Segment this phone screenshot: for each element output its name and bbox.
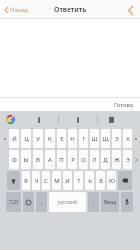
staticText: В: [36, 156, 40, 164]
staticText: Щ: [102, 135, 109, 143]
staticText: С: [44, 177, 48, 185]
staticText: Г: [82, 135, 86, 143]
staticText: Д: [103, 156, 108, 164]
button[interactable]: Б: [96, 171, 105, 190]
button[interactable]: В: [33, 150, 43, 169]
staticText: Ц: [24, 135, 29, 143]
staticText: Ж: [114, 156, 120, 164]
button[interactable]: Э: [123, 150, 132, 169]
button[interactable]: Right: [134, 150, 138, 169]
staticText: Н: [70, 135, 75, 143]
staticText: И: [65, 177, 70, 185]
button[interactable]: П: [57, 150, 66, 169]
staticText: Л: [92, 156, 97, 164]
staticText: русский: [58, 199, 78, 206]
button[interactable]: Previous: [2, 129, 7, 148]
staticText: Ь: [88, 177, 92, 185]
staticText: Ы: [23, 156, 29, 164]
staticText: Б: [99, 177, 103, 185]
staticText: Е: [60, 135, 64, 143]
button[interactable]: Н: [68, 129, 77, 148]
button[interactable]: Й: [9, 129, 19, 148]
button[interactable]: [59, 111, 97, 128]
button[interactable]: Next: [134, 129, 138, 148]
staticText: Э: [126, 156, 130, 164]
staticText: Ч: [34, 177, 39, 185]
button[interactable]: русский: [49, 192, 86, 212]
button[interactable]: Назад: [2, 4, 30, 16]
staticText: Й: [12, 135, 17, 143]
staticText: Назад: [10, 6, 28, 14]
button[interactable]: З: [112, 129, 121, 148]
button[interactable]: Comma: [36, 192, 47, 212]
button[interactable]: Ж: [112, 150, 121, 169]
button[interactable]: Ю: [107, 171, 116, 190]
button[interactable]: Google search: [0, 111, 20, 128]
staticText: А: [48, 156, 52, 164]
staticText: Ю: [109, 177, 115, 185]
button[interactable]: Л: [90, 150, 99, 169]
button[interactable]: А: [45, 150, 55, 169]
button[interactable]: Х: [123, 129, 132, 148]
button[interactable]: Д: [101, 150, 110, 169]
button[interactable]: Готово: [111, 99, 137, 111]
staticText: М: [54, 177, 60, 185]
button[interactable]: Voice input: [121, 192, 133, 212]
staticText: З: [115, 135, 119, 143]
staticText: Ввод: [104, 199, 117, 206]
staticText: О: [81, 156, 86, 164]
staticText: ,: [41, 198, 43, 206]
button[interactable]: Ь: [85, 171, 94, 190]
button[interactable]: Ф: [9, 150, 19, 169]
staticText: У: [36, 135, 40, 143]
button[interactable]: Т: [74, 171, 83, 190]
staticText: Т: [77, 177, 81, 185]
button[interactable]: К: [45, 129, 55, 148]
button[interactable]: Clipboard: [98, 111, 124, 128]
button[interactable]: Emoji: [23, 192, 34, 212]
button[interactable]: Ц: [21, 129, 31, 148]
button[interactable]: Shift: [7, 171, 20, 190]
button[interactable]: Symbols: [6, 192, 21, 212]
button[interactable]: [20, 111, 58, 128]
button[interactable]: С: [42, 171, 50, 190]
staticText: Р: [71, 156, 75, 164]
staticText: Х: [126, 135, 130, 143]
button[interactable]: Е: [57, 129, 66, 148]
button[interactable]: Send: [123, 3, 137, 17]
button[interactable]: Я: [22, 171, 30, 190]
button[interactable]: Backspace: [118, 171, 132, 190]
button[interactable]: Г: [79, 129, 88, 148]
button[interactable]: И: [63, 171, 72, 190]
staticText: Готово: [114, 101, 134, 109]
button[interactable]: М: [52, 171, 61, 190]
staticText: ?123: [9, 199, 19, 205]
button[interactable]: У: [33, 129, 43, 148]
button[interactable]: Ч: [32, 171, 40, 190]
staticText: Ф: [12, 156, 17, 164]
staticText: Ш: [91, 135, 98, 143]
button[interactable]: Ш: [90, 129, 99, 148]
staticText: К: [48, 135, 52, 143]
button[interactable]: Щ: [101, 129, 110, 148]
button[interactable]: Р: [68, 150, 77, 169]
staticText: Ответить: [54, 5, 87, 15]
staticText: П: [59, 156, 64, 164]
button[interactable]: О: [79, 150, 88, 169]
staticText: Я: [24, 177, 28, 185]
button[interactable]: Ы: [21, 150, 31, 169]
button[interactable]: Enter: [101, 192, 119, 212]
staticText: .: [93, 198, 95, 206]
